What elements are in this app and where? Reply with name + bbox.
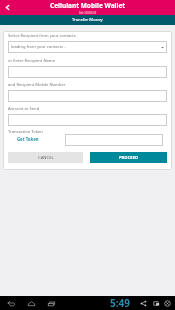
staticText: Select Recipient from your contacts [8,33,76,39]
button[interactable]: Screenshot [151,298,162,309]
button[interactable]: Close [162,298,173,309]
staticText: and Recipient Mobile Number [8,82,66,88]
staticText: Amount to Send [8,106,40,112]
staticText: Bal: N2000.00 [79,11,97,15]
button[interactable]: Recent apps [46,298,57,309]
button[interactable]: Home [26,298,37,309]
button[interactable]: PROCEED [90,152,167,163]
staticText: Get Token [17,136,39,142]
staticText: or Enter Recipient Name [8,58,55,64]
staticText: Transaction Token [8,129,43,135]
staticText: CANCEL [38,155,54,161]
staticText: loading from your contacts .. [11,44,67,50]
button[interactable]: CANCEL [8,152,83,163]
staticText: PROCEED [119,155,139,161]
staticText: 5:49 [110,296,130,310]
button[interactable]: Share [138,298,149,309]
staticText: Transfer Money [72,17,103,23]
button[interactable]: Get Token [17,136,39,142]
button[interactable]: Back [2,2,13,13]
staticText: Cellulant Mobile Wallet [50,1,126,10]
button[interactable]: Back [6,298,17,309]
